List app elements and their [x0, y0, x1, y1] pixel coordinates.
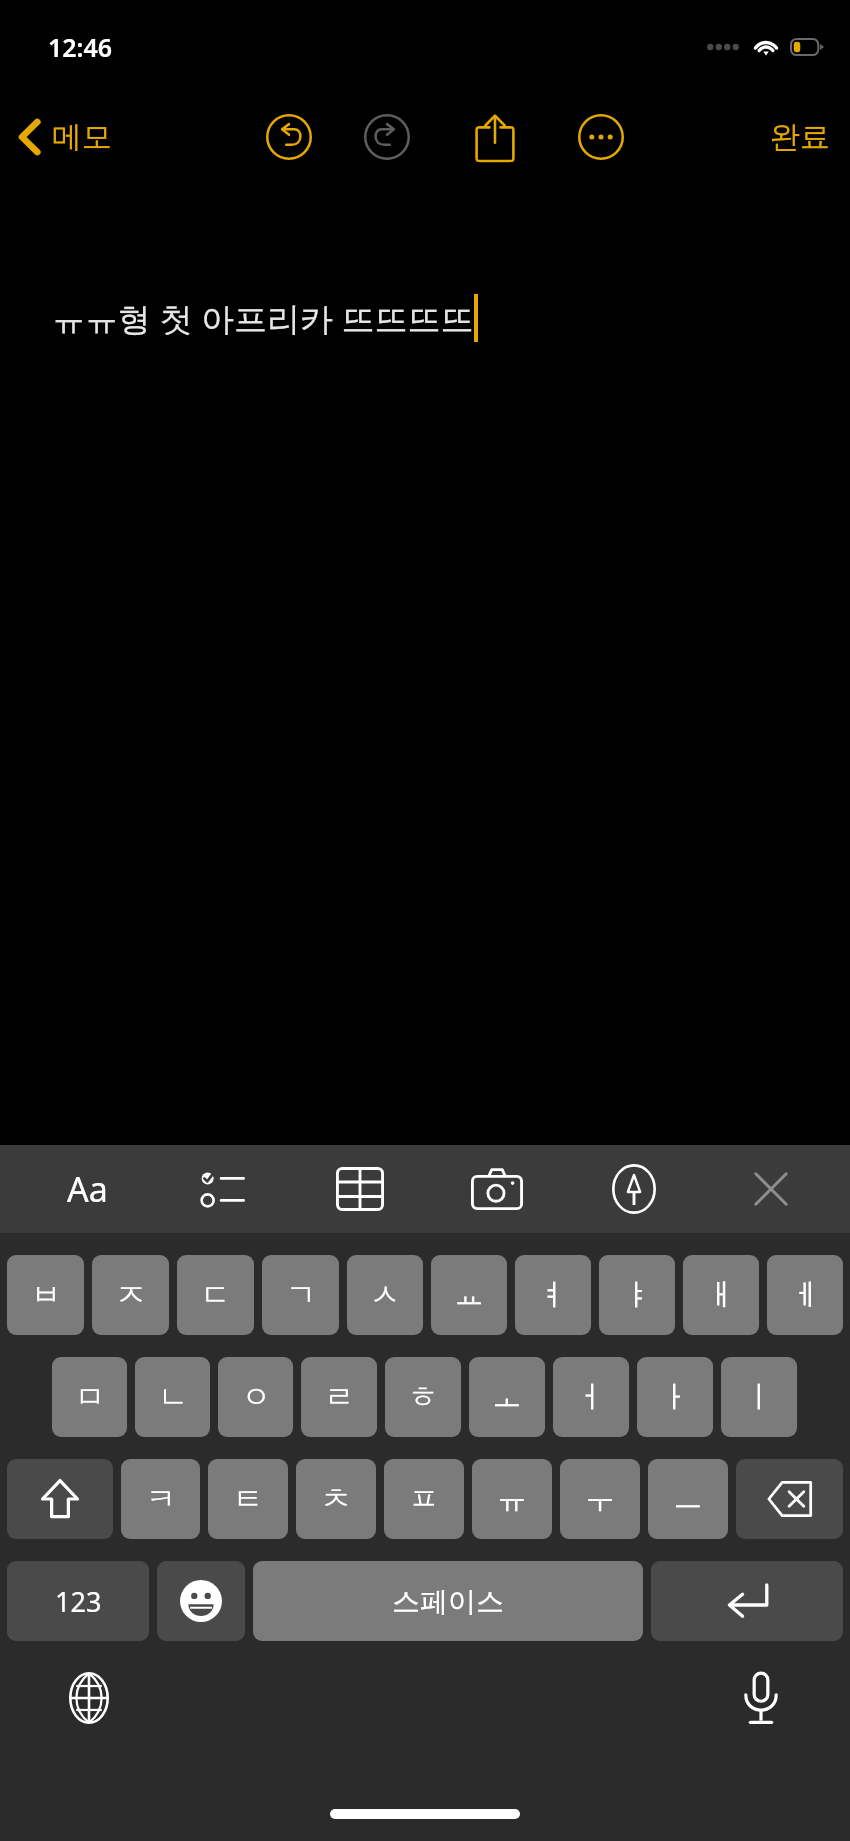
staticText: ㅊ — [321, 1480, 351, 1518]
button[interactable]: ㅏ — [637, 1357, 713, 1437]
button[interactable]: ㅔ — [767, 1255, 843, 1335]
staticText: ㄴ — [158, 1378, 188, 1416]
button[interactable]: 123 — [7, 1561, 149, 1641]
staticText: ㄷ — [201, 1276, 231, 1314]
button[interactable]: ㅣ — [721, 1357, 797, 1437]
staticText: ㅅ — [370, 1276, 400, 1314]
button[interactable]: Markup — [603, 1158, 665, 1220]
staticText: ㅂ — [31, 1276, 61, 1314]
button[interactable]: ㅓ — [553, 1357, 629, 1437]
button[interactable]: Dictation — [724, 1661, 798, 1735]
button[interactable]: ㅡ — [648, 1459, 728, 1539]
staticText: ㅇ — [241, 1378, 271, 1416]
staticText: ㅠ — [497, 1480, 527, 1518]
button[interactable]: Close keyboard — [740, 1158, 802, 1220]
button[interactable]: ㅅ — [347, 1255, 423, 1335]
staticText: ㅐ — [706, 1276, 736, 1314]
staticText: ㅗ — [492, 1378, 522, 1416]
button[interactable]: 완료 — [750, 110, 850, 164]
staticText: 12:46 — [48, 30, 113, 64]
button[interactable]: ㄴ — [135, 1357, 210, 1437]
button[interactable]: ㅋ — [121, 1459, 200, 1539]
staticText: ㅏ — [660, 1378, 690, 1416]
staticText: ㅓ — [576, 1378, 606, 1416]
button[interactable]: ㅊ — [296, 1459, 376, 1539]
button[interactable]: Share — [466, 108, 524, 166]
staticText: ㅎ — [408, 1378, 438, 1416]
button[interactable]: ㅌ — [208, 1459, 288, 1539]
staticText: ㅜ — [585, 1480, 615, 1518]
button[interactable]: ㅇ — [218, 1357, 293, 1437]
staticText: ㅡ — [673, 1480, 703, 1518]
button[interactable]: ㅁ — [52, 1357, 127, 1437]
staticText: ㅣ — [744, 1378, 774, 1416]
button[interactable]: 스페이스 — [253, 1561, 643, 1641]
button[interactable]: ㅜ — [560, 1459, 640, 1539]
button[interactable]: Shift — [7, 1459, 113, 1539]
button[interactable]: Return — [651, 1561, 843, 1641]
staticText: ㅛ — [454, 1276, 484, 1314]
staticText: ㅔ — [790, 1276, 820, 1314]
staticText: ㅌ — [233, 1480, 263, 1518]
button[interactable]: ㅂ — [7, 1255, 84, 1335]
staticText: ㅋ — [146, 1480, 176, 1518]
staticText: 메모 — [52, 118, 112, 156]
button[interactable]: ㅐ — [683, 1255, 759, 1335]
button[interactable]: Redo — [358, 108, 416, 166]
staticText: ㄹ — [324, 1378, 354, 1416]
button[interactable]: ㄱ — [262, 1255, 339, 1335]
staticText: 완료 — [770, 118, 830, 156]
button[interactable]: Next keyboard — [52, 1661, 126, 1735]
button[interactable]: ㅎ — [385, 1357, 461, 1437]
button[interactable]: ㅗ — [469, 1357, 545, 1437]
button[interactable]: More — [572, 108, 630, 166]
button[interactable]: ㅑ — [599, 1255, 675, 1335]
button[interactable]: ㅍ — [384, 1459, 464, 1539]
button[interactable]: Undo — [260, 108, 318, 166]
staticText: ㅈ — [116, 1276, 146, 1314]
button[interactable]: ㅕ — [515, 1255, 591, 1335]
staticText: 스페이스 — [392, 1584, 504, 1619]
button[interactable]: Emoji — [157, 1561, 245, 1641]
staticText: ㅍ — [409, 1480, 439, 1518]
button[interactable]: Camera — [466, 1158, 528, 1220]
staticText: 123 — [55, 1583, 102, 1620]
button[interactable]: ㄷ — [177, 1255, 254, 1335]
button[interactable]: Backspace — [736, 1459, 843, 1539]
button[interactable]: ㅛ — [431, 1255, 507, 1335]
button[interactable]: ㅈ — [92, 1255, 169, 1335]
button[interactable]: Table — [329, 1158, 391, 1220]
staticText: ㅕ — [538, 1276, 568, 1314]
staticText: Aa — [67, 1166, 108, 1212]
button[interactable]: Text format — [56, 1158, 118, 1220]
button[interactable]: ㅠ — [472, 1459, 552, 1539]
staticText: ㅁ — [75, 1378, 105, 1416]
staticText: ㄱ — [286, 1276, 316, 1314]
button[interactable]: 메모 — [0, 112, 124, 162]
button[interactable]: ㄹ — [301, 1357, 377, 1437]
button[interactable]: Checklist — [192, 1158, 254, 1220]
staticText: ㅠㅠ형 첫 아프리카 뜨뜨뜨뜨 — [52, 296, 474, 341]
staticText: ㅑ — [622, 1276, 652, 1314]
